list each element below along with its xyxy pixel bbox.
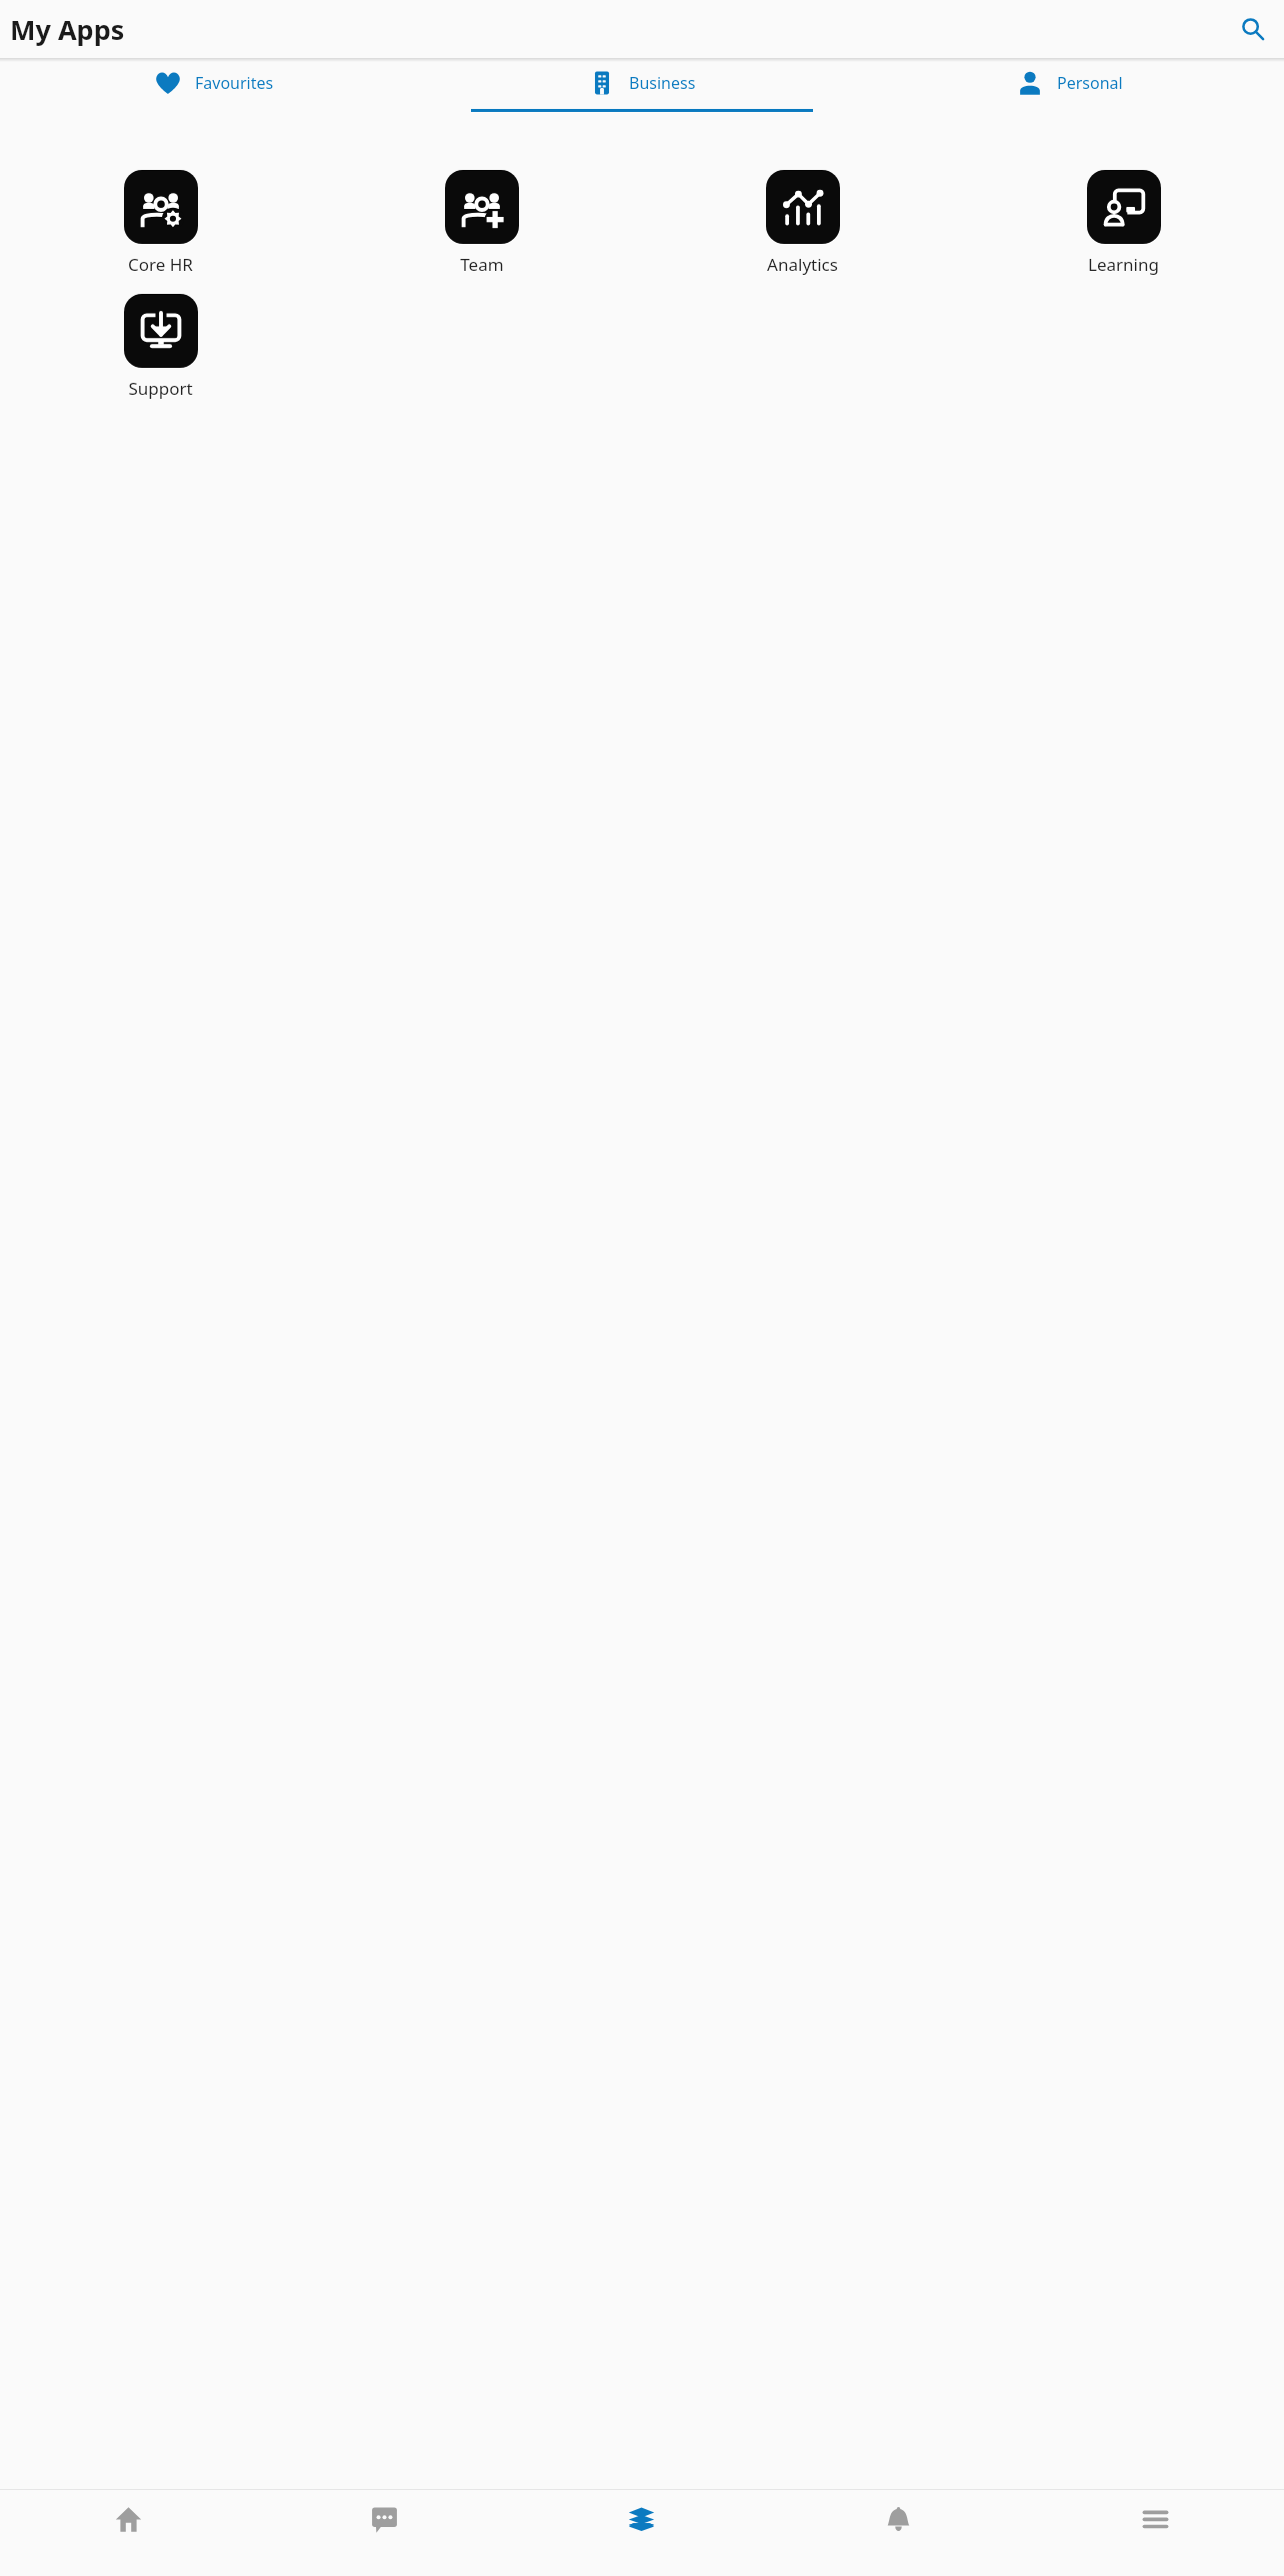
button[interactable]: Business (428, 62, 856, 112)
button[interactable]: Home (0, 2490, 256, 2576)
button[interactable]: Learning (963, 170, 1284, 276)
button[interactable]: Notifications (770, 2490, 1027, 2576)
button[interactable]: Team (321, 170, 642, 276)
button[interactable]: Messages (256, 2490, 513, 2576)
button[interactable]: Apps (513, 2490, 770, 2576)
staticText: Core HR (128, 253, 193, 276)
button[interactable]: Menu (1027, 2490, 1284, 2576)
staticText: Learning (1088, 253, 1159, 276)
staticText: Analytics (767, 253, 838, 276)
button[interactable]: Core HR (0, 170, 321, 276)
button[interactable]: Favourites (0, 62, 428, 109)
staticText: Business (629, 72, 696, 94)
button[interactable]: Personal (856, 62, 1284, 109)
button[interactable]: Support (0, 294, 321, 400)
button[interactable]: Analytics (642, 170, 963, 276)
staticText: Favourites (195, 72, 274, 94)
staticText: My Apps (10, 11, 125, 48)
staticText: Team (460, 253, 504, 276)
staticText: Personal (1057, 72, 1123, 94)
button[interactable]: Search (1234, 10, 1272, 48)
staticText: Support (128, 377, 193, 400)
